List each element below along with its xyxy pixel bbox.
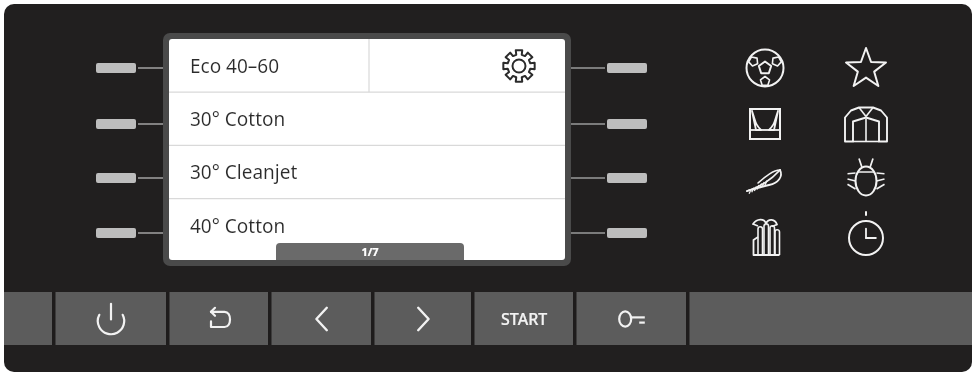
button[interactable]: Previous — [272, 292, 371, 345]
button[interactable]: Delicates — [740, 155, 790, 205]
button[interactable]: 30° Cotton — [169, 92, 565, 145]
button[interactable]: Back — [170, 292, 268, 345]
button[interactable]: Shirts — [841, 99, 891, 149]
staticText: Eco 40–60 — [190, 53, 280, 79]
staticText: 40° Cotton — [190, 213, 286, 239]
button[interactable]: Timer — [841, 211, 891, 261]
button[interactable]: Curtains — [740, 99, 790, 149]
button[interactable]: Power — [56, 292, 166, 345]
staticText: 30° Cleanjet — [190, 159, 298, 185]
staticText: 30° Cotton — [190, 106, 286, 132]
button[interactable]: 30° Cleanjet — [169, 145, 565, 198]
button[interactable]: 40° Cotton — [169, 199, 565, 252]
button[interactable]: Anti-allergy — [841, 155, 891, 205]
button[interactable]: Child lock — [577, 292, 686, 345]
staticText: START — [501, 308, 548, 330]
button[interactable]: Eco 40–60 — [169, 39, 565, 92]
button[interactable]: Settings — [499, 46, 539, 86]
button[interactable]: Start — [475, 292, 573, 345]
button[interactable]: Sportswear — [740, 43, 790, 93]
staticText: 1/7 — [361, 244, 379, 259]
button[interactable]: Hand wash — [740, 211, 790, 261]
button[interactable]: Favourite — [841, 43, 891, 93]
button[interactable]: Next — [375, 292, 471, 345]
